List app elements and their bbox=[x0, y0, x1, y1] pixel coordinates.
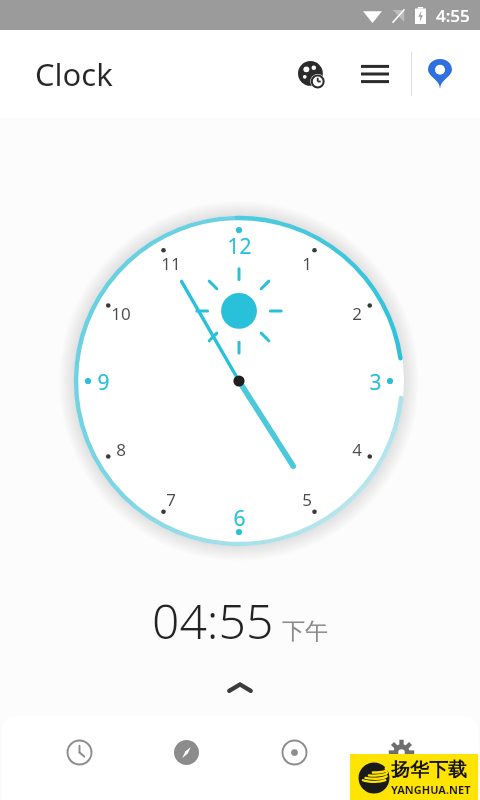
staticText: 1 bbox=[302, 252, 312, 275]
staticText: 2 bbox=[352, 302, 362, 325]
staticText: 扬华下载 bbox=[391, 758, 467, 782]
button[interactable]: Location bbox=[412, 46, 468, 102]
staticText: 10 bbox=[111, 302, 131, 325]
staticText: 8 bbox=[116, 438, 126, 461]
staticText: 11 bbox=[161, 252, 181, 275]
staticText: 6 bbox=[233, 504, 246, 530]
button[interactable]: Timer bbox=[263, 728, 325, 776]
staticText: 4 bbox=[352, 438, 362, 461]
staticText: 9 bbox=[97, 368, 110, 394]
staticText: 12 bbox=[227, 232, 252, 258]
button[interactable]: World clock bbox=[285, 48, 337, 100]
staticText: 7 bbox=[166, 488, 176, 511]
staticText: Clock bbox=[35, 53, 113, 95]
button[interactable]: Clock bbox=[48, 728, 110, 776]
staticText: 5 bbox=[302, 488, 312, 511]
button[interactable]: Compass bbox=[155, 728, 217, 776]
staticText: 3 bbox=[369, 368, 382, 394]
button[interactable]: Menu bbox=[349, 48, 401, 100]
button[interactable]: Expand bbox=[0, 666, 480, 710]
button[interactable]: 12 bbox=[58, 200, 420, 562]
button[interactable]: Settings bbox=[370, 728, 432, 776]
staticText: 4:55 bbox=[436, 4, 470, 27]
staticText: YANGHUA.NET bbox=[391, 782, 471, 797]
staticText: 04:55 bbox=[152, 588, 274, 653]
staticText: 下午 bbox=[282, 617, 328, 646]
